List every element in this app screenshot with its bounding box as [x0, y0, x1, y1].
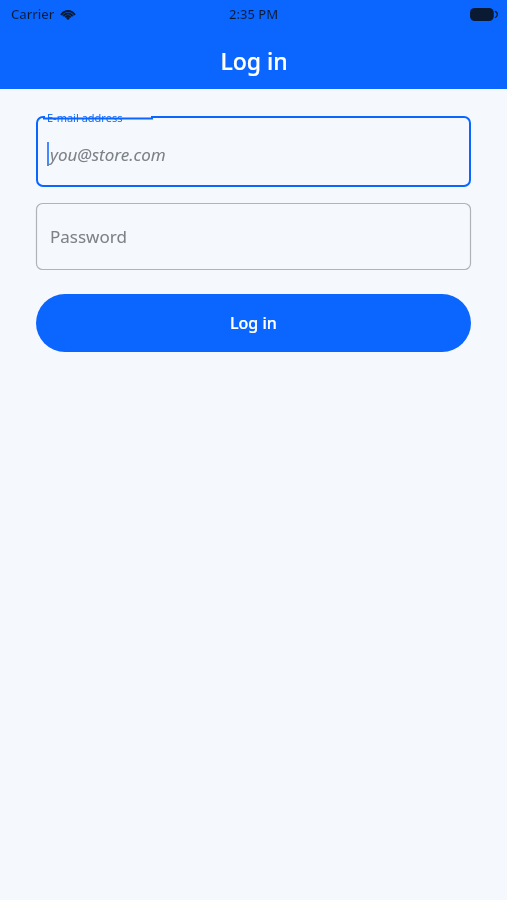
- staticText: Password: [50, 225, 127, 248]
- staticText: you@store.com: [50, 143, 166, 166]
- staticText: 2:35 PM: [229, 5, 279, 23]
- staticText: Log in: [230, 312, 277, 334]
- button[interactable]: Password: [36, 203, 471, 270]
- button[interactable]: you@store.com: [36, 116, 471, 187]
- staticText: Carrier: [11, 5, 55, 23]
- button[interactable]: Log in: [36, 294, 471, 352]
- staticText: Log in: [220, 45, 288, 76]
- staticText: E-mail address: [47, 110, 123, 125]
